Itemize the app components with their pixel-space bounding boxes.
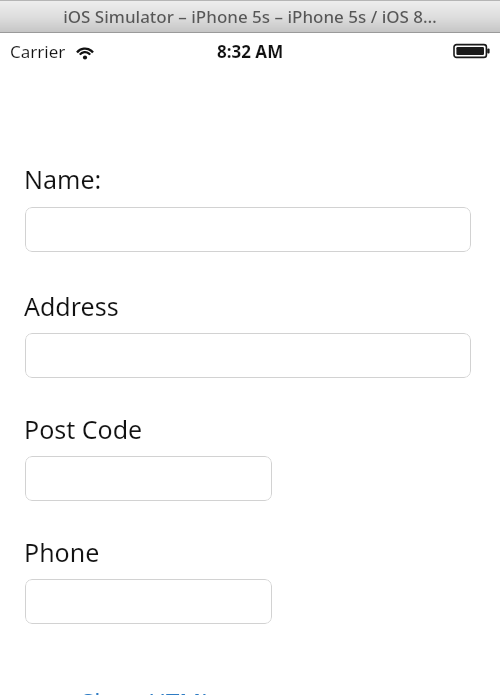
staticText: iOS Simulator – iPhone 5s – iPhone 5s / …: [63, 5, 437, 28]
staticText: Phone: [24, 535, 100, 569]
button[interactable]: Text field: [25, 207, 471, 252]
staticText: Show HTML: [81, 685, 214, 695]
button[interactable]: Text field: [25, 579, 272, 624]
staticText: 8:32 AM: [217, 40, 284, 63]
button[interactable]: Text field: [25, 456, 272, 501]
button[interactable]: Show HTML: [63, 679, 231, 695]
button[interactable]: Text field: [25, 333, 471, 378]
staticText: Name:: [24, 162, 102, 196]
staticText: Carrier: [10, 40, 66, 63]
staticText: Address: [24, 289, 119, 323]
staticText: Post Code: [24, 412, 143, 446]
